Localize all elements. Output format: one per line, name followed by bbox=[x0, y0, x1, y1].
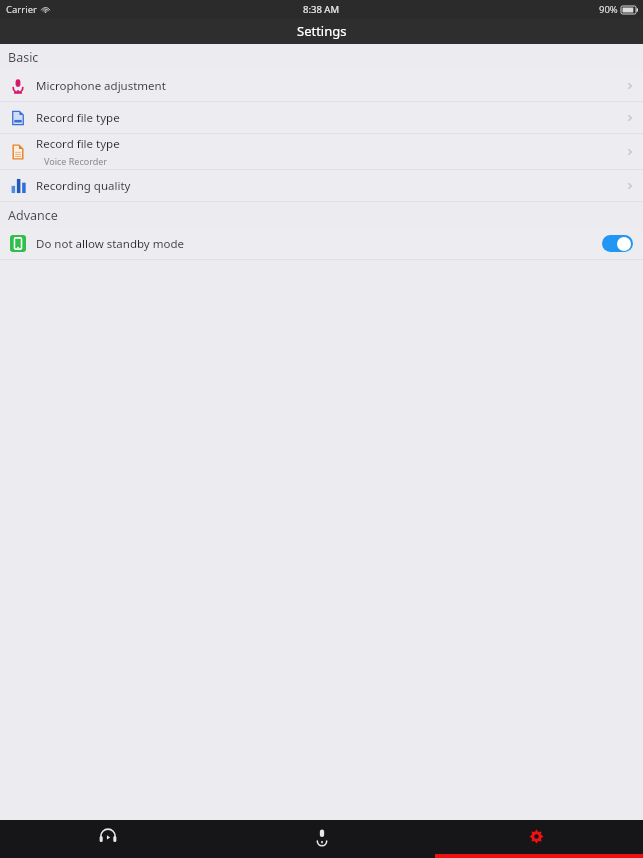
staticText: Record file type bbox=[36, 136, 120, 152]
staticText: Settings bbox=[297, 22, 347, 40]
button[interactable]: Record bbox=[215, 820, 429, 858]
button[interactable]: Do not allow standby mode toggle bbox=[602, 235, 633, 252]
staticText: Basic bbox=[8, 49, 39, 66]
button[interactable]: Microphone adjustment bbox=[0, 70, 643, 101]
button[interactable]: Recording quality bbox=[0, 170, 643, 201]
staticText: 8:38 AM bbox=[303, 3, 340, 16]
staticText: Record file type bbox=[36, 110, 120, 126]
staticText: Voice Recorder bbox=[44, 155, 108, 167]
staticText: Do not allow standby mode bbox=[36, 236, 184, 252]
button[interactable]: Do not allow standby mode bbox=[0, 228, 643, 259]
staticText: 90% bbox=[599, 3, 618, 16]
staticText: Advance bbox=[8, 207, 58, 224]
staticText: Carrier bbox=[6, 3, 37, 16]
button[interactable]: Record file type bbox=[0, 134, 643, 169]
staticText: Recording quality bbox=[36, 178, 131, 194]
button[interactable]: Record file type bbox=[0, 102, 643, 133]
staticText: Microphone adjustment bbox=[36, 78, 166, 94]
button[interactable]: Settings bbox=[429, 820, 643, 858]
button[interactable]: Play bbox=[0, 820, 215, 858]
